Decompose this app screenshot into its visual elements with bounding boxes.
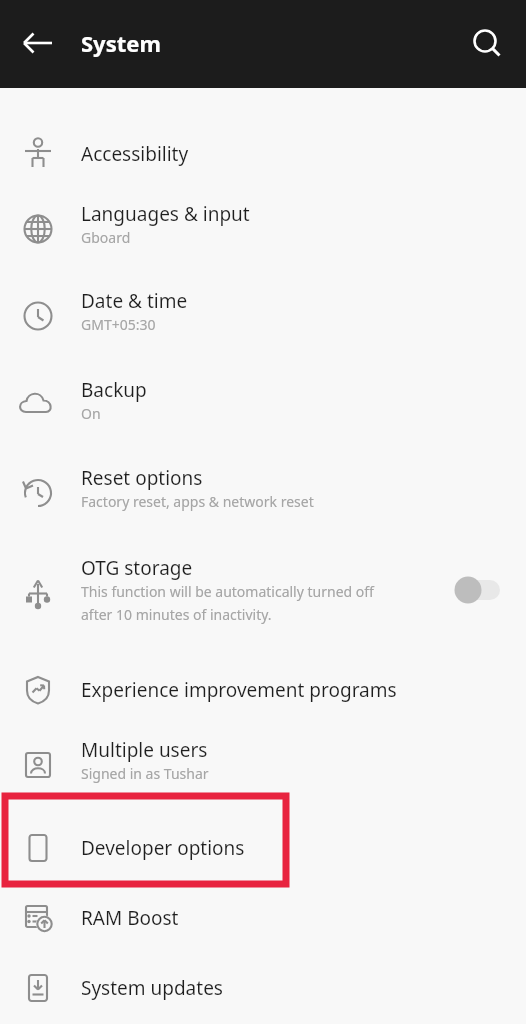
staticText: Gboard xyxy=(81,228,131,247)
button[interactable]: Backup xyxy=(0,368,526,442)
button[interactable]: Accessibility xyxy=(0,126,526,182)
staticText: OTG storage xyxy=(81,555,193,581)
button[interactable]: Multiple users xyxy=(0,728,526,802)
staticText: Experience improvement programs xyxy=(81,677,397,703)
staticText: Developer options xyxy=(81,835,245,861)
staticText: System updates xyxy=(81,975,223,1001)
staticText: after 10 minutes of inactivity. xyxy=(81,605,272,624)
staticText: On xyxy=(81,404,101,423)
staticText: Backup xyxy=(81,377,147,403)
button[interactable]: Developer options xyxy=(0,820,526,876)
staticText: RAM Boost xyxy=(81,905,179,931)
staticText: GMT+05:30 xyxy=(81,315,156,334)
staticText: Date & time xyxy=(81,288,188,314)
button[interactable]: OTG storage xyxy=(0,545,526,645)
button[interactable]: Experience improvement programs xyxy=(0,662,526,718)
staticText: This function will be automatically turn… xyxy=(81,582,374,601)
staticText: Signed in as Tushar xyxy=(81,764,209,783)
button[interactable]: System updates xyxy=(0,960,526,1016)
button[interactable]: OTG storage toggle xyxy=(442,569,498,611)
staticText: Languages & input xyxy=(81,201,250,227)
button[interactable]: RAM Boost xyxy=(0,890,526,946)
button[interactable]: Languages & input xyxy=(0,192,526,266)
button[interactable]: Date & time xyxy=(0,279,526,353)
button[interactable]: Back xyxy=(14,19,62,67)
staticText: Factory reset, apps & network reset xyxy=(81,492,314,511)
staticText: Reset options xyxy=(81,465,203,491)
staticText: System xyxy=(81,28,161,58)
staticText: Multiple users xyxy=(81,737,208,763)
button[interactable]: Reset options xyxy=(0,456,526,530)
button[interactable]: Search xyxy=(463,19,511,67)
staticText: Accessibility xyxy=(81,141,189,167)
